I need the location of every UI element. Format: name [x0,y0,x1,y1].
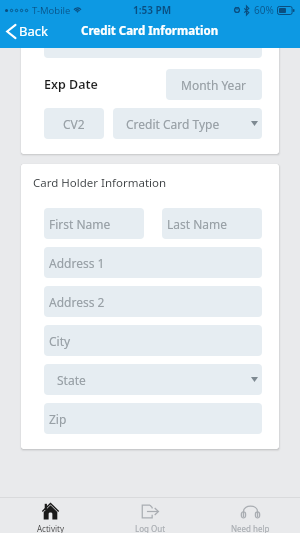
staticText: Credit Card Information [81,23,219,39]
other: Activity [42,502,59,520]
staticText: Month Year [181,77,247,93]
staticText: 60% [254,3,274,17]
staticText: Activity [37,523,64,533]
staticText: First Name [49,216,111,232]
button[interactable]: Credit Card Type [113,108,262,139]
staticText: Zip [49,411,67,427]
staticText: Address 2 [49,294,105,310]
staticText: Back [19,22,48,40]
staticText: Card Details [33,0,99,10]
staticText: Need help [231,523,270,533]
staticText: Card Holder Information [33,175,167,191]
staticText: Exp Date [44,76,98,93]
button[interactable]: State [44,364,262,395]
button[interactable]: City [44,325,262,356]
button[interactable]: Month Year [166,69,262,100]
staticText: Credit Card Type [126,116,220,132]
button[interactable]: Last Name [162,208,262,239]
staticText: Credit Card Number [96,35,210,51]
button[interactable]: Activity [0,498,100,533]
button[interactable]: Zip [44,403,262,434]
staticText: CV2 [63,116,85,132]
staticText: Address 1 [49,255,105,271]
button[interactable]: Credit Card Number [44,27,262,58]
staticText: Log Out [135,523,166,533]
staticText: T-Mobile [32,4,71,17]
staticText: 1:53 PM [133,3,172,17]
button[interactable]: First Name [44,208,144,239]
button[interactable]: Address 1 [44,247,262,278]
button[interactable]: Need help [200,498,300,533]
other: Need help [241,504,260,519]
other: Log Out [141,504,159,519]
staticText: City [49,333,71,349]
button[interactable]: Log Out [100,498,200,533]
button[interactable]: Address 2 [44,286,262,317]
staticText: State [57,372,86,388]
staticText: Last Name [167,216,228,232]
button[interactable]: Back [0,19,56,43]
button[interactable]: CV2 [44,108,104,139]
